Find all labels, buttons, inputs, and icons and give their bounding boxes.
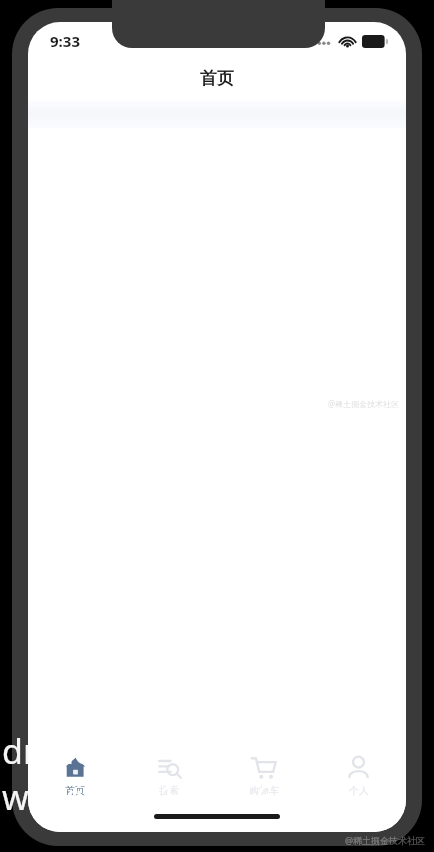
- button[interactable]: 购物车: [216, 746, 311, 808]
- staticText: 首页: [65, 784, 85, 797]
- staticText: dn.nec/weixin_4711666643: [2, 728, 434, 820]
- staticText: 购物车: [249, 784, 279, 797]
- staticText: 首页: [200, 68, 234, 89]
- button[interactable]: 首页: [28, 746, 122, 808]
- button[interactable]: 个人: [311, 746, 406, 808]
- staticText: @稀土掘金技术社区: [328, 398, 400, 409]
- staticText: 搜索: [159, 784, 179, 797]
- staticText: @稀土掘金技术社区: [345, 834, 426, 846]
- button[interactable]: 搜索: [122, 746, 216, 808]
- staticText: 个人: [349, 784, 369, 797]
- staticText: 9:33: [50, 31, 80, 51]
